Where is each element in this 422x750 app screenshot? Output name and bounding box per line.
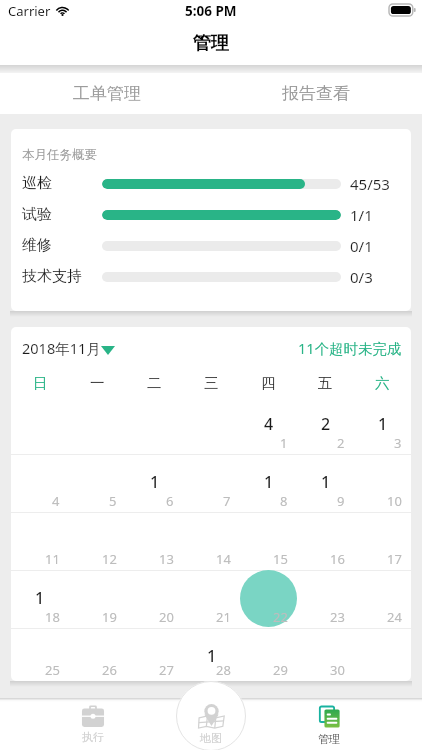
- button[interactable]: 1: [11, 571, 69, 628]
- staticText: 二: [147, 374, 162, 392]
- button[interactable]: 4: [11, 455, 69, 512]
- button[interactable]: 20: [126, 571, 183, 628]
- staticText: 3: [394, 434, 402, 452]
- staticText: 1/1: [350, 205, 373, 225]
- staticText: 20: [159, 608, 174, 626]
- staticText: 5: [109, 492, 117, 510]
- staticText: 1: [207, 645, 217, 667]
- button[interactable]: 1: [240, 455, 297, 512]
- button[interactable]: 29: [240, 629, 297, 681]
- button[interactable]: 22: [240, 571, 297, 628]
- staticText: 2: [321, 413, 331, 435]
- button[interactable]: 27: [126, 629, 183, 681]
- other: Map: [198, 704, 225, 728]
- button[interactable]: 17: [354, 513, 411, 570]
- button[interactable]: 1: [354, 397, 411, 454]
- staticText: 试验: [22, 205, 52, 224]
- staticText: 17: [387, 550, 402, 568]
- staticText: 1: [264, 471, 274, 493]
- button[interactable]: 10: [354, 455, 411, 512]
- button[interactable]: 11: [11, 513, 69, 570]
- button[interactable]: 1: [297, 455, 354, 512]
- staticText: 2018年11月: [22, 338, 101, 358]
- staticText: 1: [35, 587, 45, 609]
- staticText: 管理: [318, 732, 340, 746]
- staticText: 6: [166, 492, 174, 510]
- staticText: 9: [337, 492, 345, 510]
- staticText: 2: [337, 434, 345, 452]
- staticText: 28: [216, 661, 231, 679]
- staticText: 0/1: [350, 236, 373, 256]
- staticText: 15: [273, 550, 288, 568]
- staticText: 5:06 PM: [185, 2, 237, 20]
- button[interactable]: 4: [240, 397, 297, 454]
- button[interactable]: 11个超时未完成: [298, 338, 402, 358]
- button[interactable]: 19: [69, 571, 126, 628]
- staticText: 工单管理: [73, 83, 141, 104]
- button[interactable]: Map: [152, 699, 270, 750]
- staticText: 14: [216, 550, 231, 568]
- staticText: 四: [261, 374, 276, 392]
- staticText: 报告查看: [282, 83, 350, 104]
- button[interactable]: 21: [183, 571, 240, 628]
- button[interactable]: 5: [69, 455, 126, 512]
- other: Tasks: [81, 705, 105, 727]
- staticText: 管理: [193, 32, 229, 55]
- staticText: 六: [375, 374, 390, 392]
- staticText: 25: [45, 661, 60, 679]
- staticText: 日: [33, 374, 48, 392]
- staticText: 16: [330, 550, 345, 568]
- button[interactable]: 报告查看: [211, 73, 420, 114]
- staticText: 10: [387, 492, 402, 510]
- button[interactable]: 2: [297, 397, 354, 454]
- staticText: 维修: [22, 236, 52, 255]
- button[interactable]: 工单管理: [2, 73, 211, 114]
- button[interactable]: 23: [297, 571, 354, 628]
- staticText: 13: [159, 550, 174, 568]
- staticText: Carrier: [8, 2, 51, 20]
- button[interactable]: 12: [69, 513, 126, 570]
- button[interactable]: 2018年11月: [22, 338, 115, 358]
- staticText: 23: [330, 608, 345, 626]
- button[interactable]: 7: [183, 455, 240, 512]
- staticText: 29: [273, 661, 288, 679]
- staticText: 11: [45, 550, 60, 568]
- staticText: 巡检: [22, 174, 52, 193]
- button[interactable]: 30: [297, 629, 354, 681]
- button[interactable]: 15: [240, 513, 297, 570]
- button[interactable]: 14: [183, 513, 240, 570]
- staticText: 4: [52, 492, 60, 510]
- button[interactable]: 26: [69, 629, 126, 681]
- button[interactable]: 1: [183, 629, 240, 681]
- staticText: 24: [387, 608, 402, 626]
- other: Management: [318, 704, 341, 729]
- staticText: 五: [318, 374, 333, 392]
- staticText: 一: [90, 374, 105, 392]
- staticText: 12: [102, 550, 117, 568]
- button[interactable]: Management: [270, 699, 388, 750]
- staticText: 22: [273, 608, 288, 626]
- button[interactable]: 1: [126, 455, 183, 512]
- staticText: 执行: [82, 730, 104, 744]
- staticText: 地图: [200, 731, 222, 745]
- staticText: 21: [216, 608, 231, 626]
- staticText: 27: [159, 661, 174, 679]
- staticText: 8: [280, 492, 288, 510]
- staticText: 7: [223, 492, 231, 510]
- button[interactable]: 16: [297, 513, 354, 570]
- staticText: 1: [321, 471, 331, 493]
- staticText: 三: [204, 374, 219, 392]
- staticText: 26: [102, 661, 117, 679]
- staticText: 0/3: [350, 267, 373, 287]
- button[interactable]: 24: [354, 571, 411, 628]
- button[interactable]: Tasks: [34, 699, 152, 750]
- button[interactable]: 25: [11, 629, 69, 681]
- staticText: 1: [280, 434, 288, 452]
- button[interactable]: 13: [126, 513, 183, 570]
- staticText: 18: [45, 608, 60, 626]
